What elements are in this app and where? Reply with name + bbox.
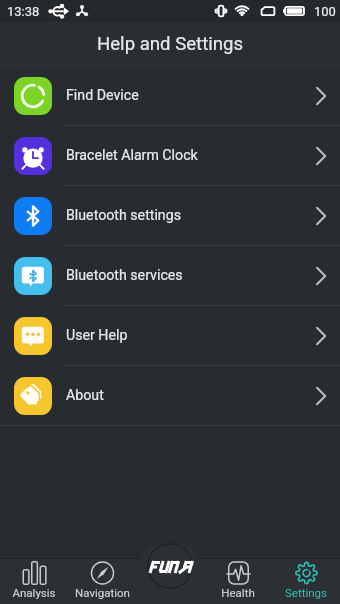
staticText: Find Device <box>66 87 139 104</box>
staticText: About <box>66 387 104 404</box>
staticText: 13:38 <box>7 4 40 19</box>
button[interactable]: Bluetooth settings <box>0 186 340 245</box>
button[interactable]: Health <box>204 558 272 604</box>
staticText: Bracelet Alarm Clock <box>66 147 198 164</box>
staticText: 100 <box>314 4 336 19</box>
staticText: Help and Settings <box>97 33 244 55</box>
button[interactable]: Bluetooth services <box>0 246 340 305</box>
staticText: Settings <box>285 586 327 599</box>
staticText: Navigation <box>75 586 130 599</box>
staticText: Health <box>221 586 255 599</box>
button[interactable]: Bracelet Alarm Clock <box>0 126 340 185</box>
button[interactable]: Find Device <box>0 66 340 125</box>
staticText: Bluetooth services <box>66 267 183 284</box>
button[interactable]: Navigation <box>68 558 136 604</box>
staticText: User Help <box>66 327 128 344</box>
button[interactable]: Run <box>140 543 200 589</box>
staticText: Bluetooth settings <box>66 207 181 224</box>
button[interactable]: User Help <box>0 306 340 365</box>
staticText: Analysis <box>12 586 56 599</box>
button[interactable]: About <box>0 366 340 425</box>
button[interactable]: Analysis <box>0 558 68 604</box>
button[interactable]: Settings <box>272 558 340 604</box>
